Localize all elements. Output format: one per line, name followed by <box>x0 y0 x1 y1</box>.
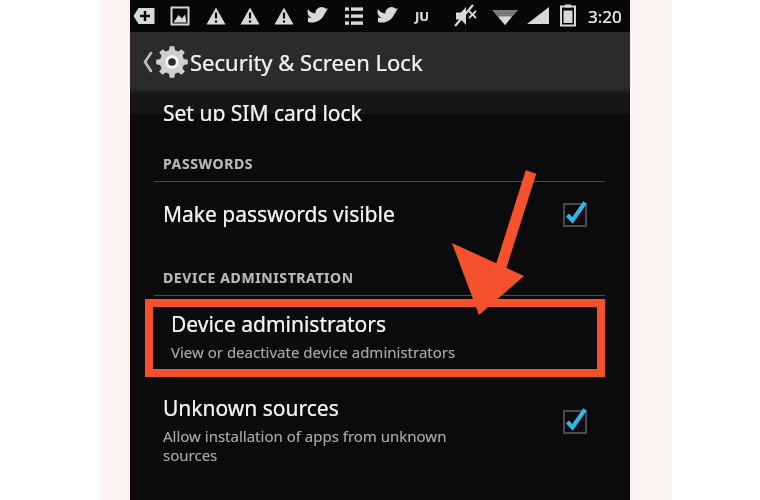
button[interactable]: Set up SIM card lock <box>130 92 630 114</box>
button[interactable]: Navigate up: Security & Screen Lock <box>130 32 630 92</box>
button[interactable]: Make passwords visible <box>130 182 630 246</box>
staticText: Make passwords visible <box>163 200 395 229</box>
button[interactable]: Unknown sources checkbox <box>560 407 590 437</box>
staticText: 3:20 <box>588 5 622 28</box>
button[interactable]: Unknown sources <box>130 382 630 468</box>
staticText: Device administrators <box>171 310 387 339</box>
staticText: PASSWORDS <box>163 154 254 173</box>
staticText: Set up SIM card lock <box>163 99 362 121</box>
staticText: View or deactivate device administrators <box>171 342 456 362</box>
staticText: Allow installation of apps from unknown … <box>163 426 447 465</box>
button[interactable]: Make passwords visible checkbox <box>560 200 590 230</box>
staticText: Security & Screen Lock <box>190 47 423 77</box>
button[interactable]: Device administrators <box>153 307 597 369</box>
staticText: Unknown sources <box>163 394 339 423</box>
staticText: DEVICE ADMINISTRATION <box>163 268 354 287</box>
staticText: JU <box>415 7 430 25</box>
